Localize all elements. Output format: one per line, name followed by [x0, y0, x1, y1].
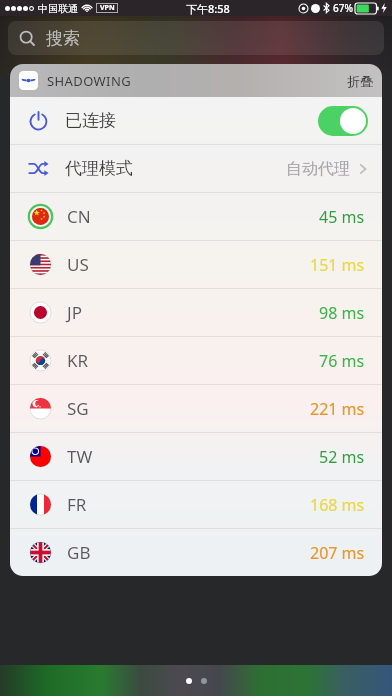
staticText: 207 ms	[310, 542, 365, 564]
staticText: 168 ms	[310, 494, 365, 516]
staticText: 代理模式	[65, 158, 133, 179]
button[interactable]: US	[10, 241, 382, 288]
staticText: CN	[67, 205, 91, 228]
button[interactable]: Connection toggle	[318, 106, 368, 136]
staticText: 76 ms	[319, 350, 365, 372]
staticText: 45 ms	[319, 206, 365, 228]
button[interactable]: FR	[10, 481, 382, 528]
button[interactable]: 搜索	[8, 21, 384, 55]
staticText: 中国联通	[38, 2, 78, 15]
staticText: TW	[67, 445, 93, 468]
staticText: FR	[67, 493, 87, 516]
button[interactable]: GB	[10, 529, 382, 576]
staticText: KR	[67, 349, 89, 372]
staticText: 已连接	[65, 110, 116, 131]
staticText: 67%	[333, 1, 353, 15]
staticText: 搜索	[46, 28, 80, 49]
staticText: SHADOWING	[47, 72, 132, 90]
button[interactable]: 代理模式	[10, 145, 382, 192]
staticText: 52 ms	[319, 446, 365, 468]
button[interactable]: SHADOWING	[10, 64, 382, 97]
staticText: 下午8:58	[186, 1, 230, 16]
button[interactable]: KR	[10, 337, 382, 384]
staticText: VPN	[100, 3, 115, 13]
staticText: SG	[67, 397, 89, 420]
staticText: 221 ms	[310, 398, 365, 420]
button[interactable]: SG	[10, 385, 382, 432]
button[interactable]: JP	[10, 289, 382, 336]
button[interactable]: CN	[10, 193, 382, 240]
staticText: GB	[67, 541, 91, 564]
staticText: JP	[67, 301, 82, 324]
button[interactable]: TW	[10, 433, 382, 480]
staticText: 98 ms	[319, 302, 365, 324]
button[interactable]: 折叠	[347, 73, 373, 89]
staticText: US	[67, 253, 89, 276]
button[interactable]: 已连接	[10, 97, 382, 144]
staticText: 自动代理	[286, 159, 350, 179]
staticText: 151 ms	[310, 254, 365, 276]
